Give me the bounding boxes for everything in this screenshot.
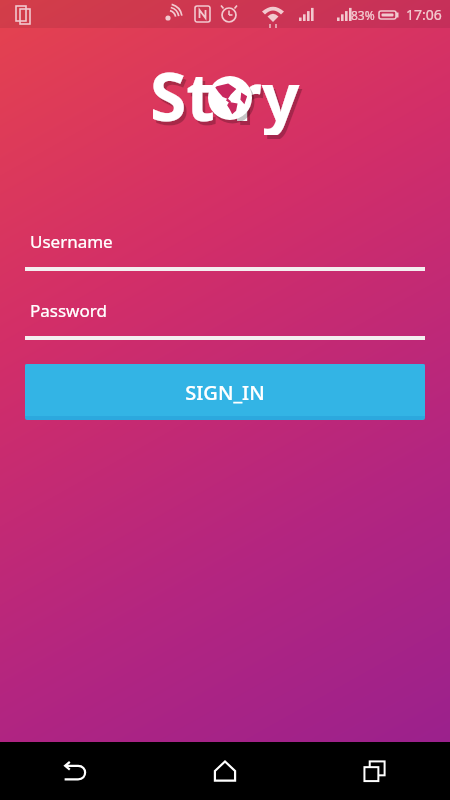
staticText: 83%: [351, 7, 375, 23]
button[interactable]: Password: [25, 299, 425, 340]
button[interactable]: SIGN_IN: [25, 364, 425, 420]
staticText: SIGN_IN: [185, 379, 265, 406]
staticText: St ry: [150, 50, 300, 135]
staticText: St ry: [153, 54, 303, 139]
button[interactable]: Recent apps: [300, 742, 450, 800]
button[interactable]: Home: [150, 742, 300, 800]
staticText: Password: [30, 299, 107, 322]
staticText: 17:06: [406, 5, 442, 24]
button[interactable]: Back: [0, 742, 150, 800]
button[interactable]: Username: [25, 230, 425, 271]
staticText: Username: [30, 230, 113, 253]
